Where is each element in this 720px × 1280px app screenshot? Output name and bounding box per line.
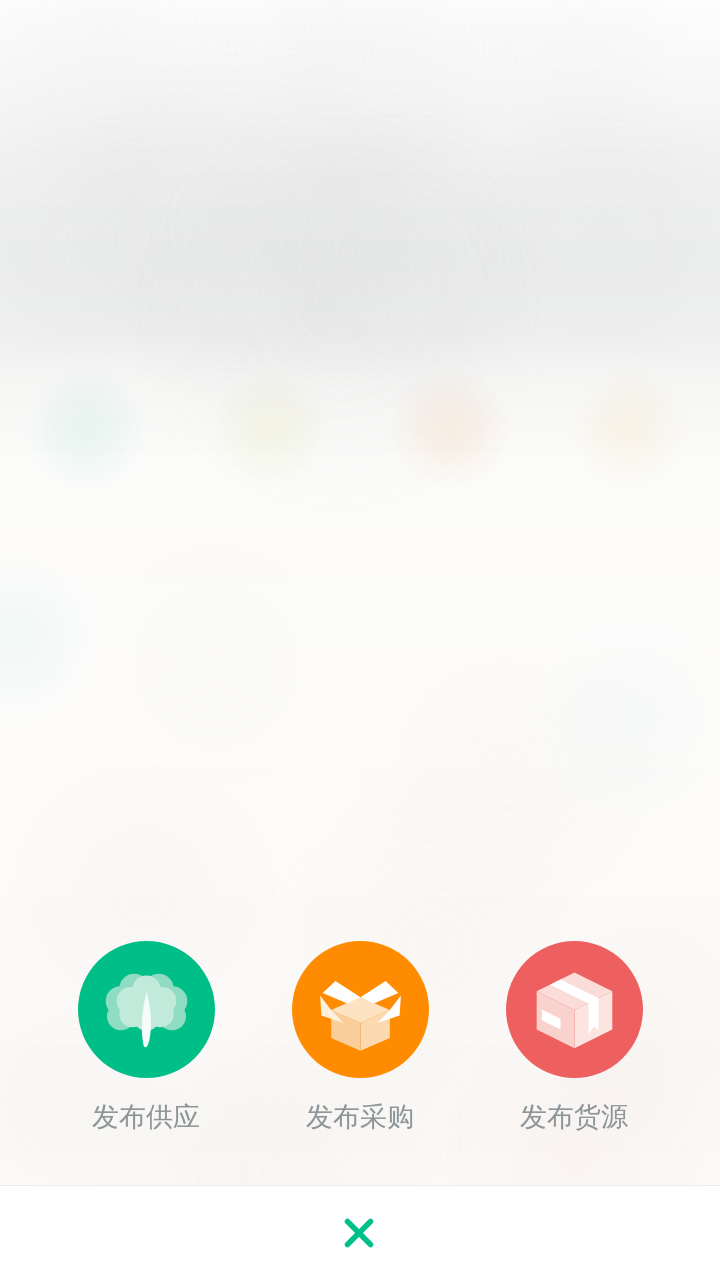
button[interactable]: 关闭	[311, 1186, 407, 1280]
staticText: 发布供应	[92, 1100, 200, 1134]
staticText: 发布货源	[520, 1100, 628, 1134]
button[interactable]: 发布供应	[48, 927, 244, 1134]
staticText: 发布采购	[306, 1100, 414, 1134]
button[interactable]: 发布货源	[476, 927, 672, 1134]
button[interactable]: 发布采购	[262, 927, 458, 1134]
